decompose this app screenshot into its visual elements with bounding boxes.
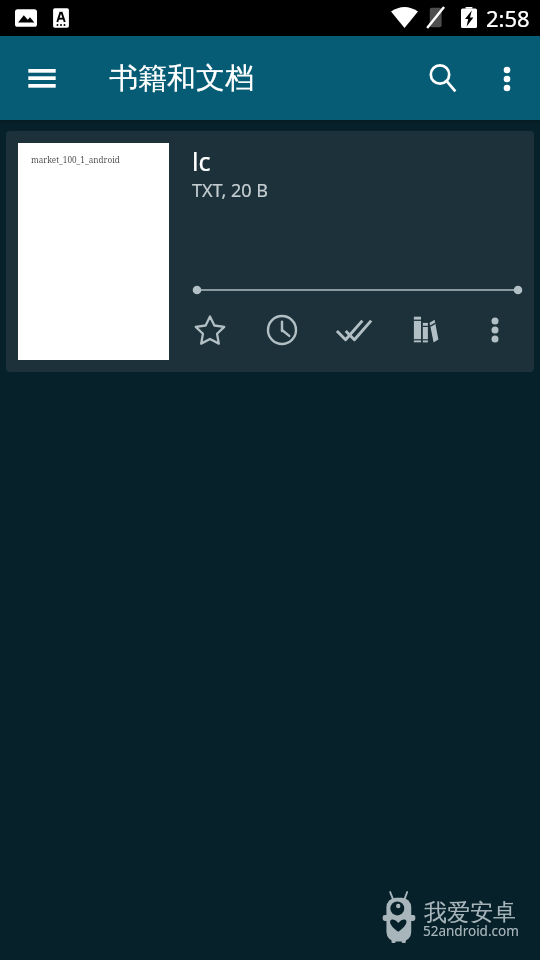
- button[interactable]: More options: [484, 55, 530, 101]
- staticText: market_100_1_android: [31, 154, 120, 165]
- button[interactable]: Add to favourites: [188, 308, 232, 352]
- staticText: 2:58: [486, 3, 530, 33]
- button[interactable]: market_100_1_android: [6, 131, 534, 372]
- button[interactable]: More options: [473, 308, 517, 352]
- staticText: 我爱安卓: [424, 898, 516, 927]
- staticText: TXT, 20 B: [192, 178, 268, 203]
- button[interactable]: Mark as read: [332, 308, 376, 352]
- button[interactable]: Open navigation drawer: [7, 36, 77, 120]
- button[interactable]: Add to bookshelf: [404, 308, 448, 352]
- button[interactable]: Search: [415, 50, 471, 106]
- staticText: lc: [192, 144, 211, 178]
- staticText: 52android.com: [423, 922, 519, 940]
- button[interactable]: Recently read: [260, 308, 304, 352]
- staticText: 书籍和文档: [109, 60, 254, 97]
